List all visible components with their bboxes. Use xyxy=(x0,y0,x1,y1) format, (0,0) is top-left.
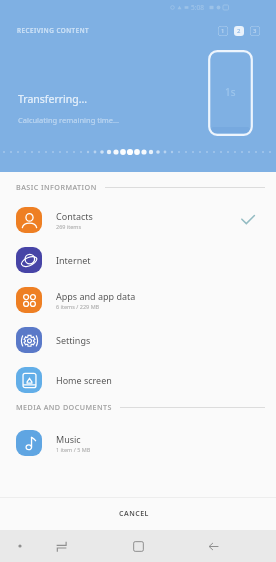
staticText: Apps and app data xyxy=(56,290,136,302)
staticText: 1s xyxy=(225,85,236,99)
button[interactable]: Music xyxy=(0,423,276,463)
button[interactable]: Step 3 xyxy=(250,26,260,36)
staticText: RECEIVING CONTENT xyxy=(17,26,90,35)
staticText: 6 items / 229 MB xyxy=(56,303,100,310)
staticText: 2 xyxy=(237,27,241,35)
staticText: 1 item / 5 MB xyxy=(56,446,91,453)
button[interactable]: Home xyxy=(122,530,154,562)
button[interactable]: Settings xyxy=(0,320,276,360)
staticText: Settings xyxy=(56,334,91,346)
staticText: Home screen xyxy=(56,374,112,386)
button[interactable]: Recents xyxy=(45,530,77,562)
staticText: 3 xyxy=(253,27,257,35)
staticText: BASIC INFORMATION xyxy=(16,182,97,192)
staticText: Calculating remaining time... xyxy=(18,115,120,125)
staticText: 269 items xyxy=(56,223,82,230)
button[interactable]: Contacts xyxy=(0,200,276,240)
button[interactable]: Apps and app data xyxy=(0,280,276,320)
staticText: Music xyxy=(56,433,81,445)
staticText: CANCEL xyxy=(119,509,149,519)
button[interactable]: Step 1 xyxy=(218,26,228,36)
button[interactable]: Step 2 xyxy=(234,26,244,36)
button[interactable]: Home screen xyxy=(0,360,276,400)
button[interactable]: Back xyxy=(197,530,229,562)
button[interactable]: Internet xyxy=(0,240,276,280)
staticText: Transferring... xyxy=(18,92,88,106)
staticText: MEDIA AND DOCUMENTS xyxy=(16,402,112,412)
staticText: Contacts xyxy=(56,210,93,222)
staticText: Internet xyxy=(56,254,91,266)
staticText: 5:08 xyxy=(191,3,204,11)
button[interactable]: CANCEL xyxy=(0,497,276,530)
staticText: 1 xyxy=(221,27,225,35)
